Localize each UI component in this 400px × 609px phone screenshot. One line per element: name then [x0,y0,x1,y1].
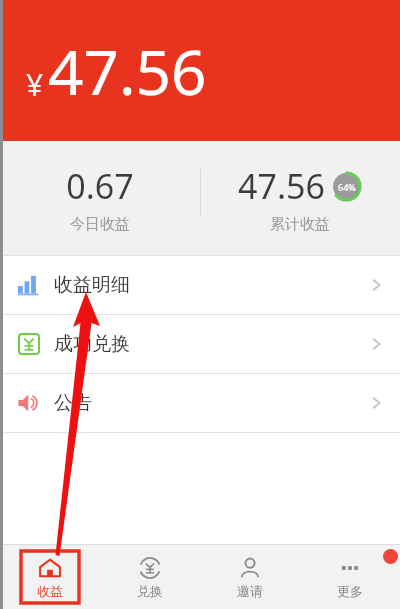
button[interactable]: 兑换 [100,545,200,609]
button[interactable]: 邀请 [200,545,300,609]
button[interactable]: 更多 [300,545,400,609]
staticText: 47.56 [238,163,325,209]
button[interactable]: 公告 [0,374,400,432]
staticText: 成功兑换 [54,332,130,356]
staticText: 公告 [54,391,92,415]
staticText: 邀请 [237,583,263,599]
staticText: 64% [338,181,356,193]
other: 更多 [339,557,361,579]
staticText: ¥ [26,64,44,105]
staticText: 47.56 [48,29,207,113]
other: 收益 [39,557,61,579]
staticText: 更多 [337,583,363,599]
other: 邀请 [239,557,261,579]
staticText: 今日收益 [70,215,130,234]
staticText: 收益 [37,583,63,599]
staticText: 0.67 [66,163,134,209]
button[interactable]: 收益 [0,545,100,609]
button[interactable]: 收益明细 [0,256,400,314]
other: 兑换 [139,557,161,579]
staticText: 累计收益 [270,215,330,234]
button[interactable]: 成功兑换 [0,315,400,373]
staticText: 收益明细 [54,273,130,297]
staticText: 兑换 [137,583,163,599]
